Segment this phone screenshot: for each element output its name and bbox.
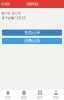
staticText: 返回	[4, 2, 10, 6]
staticText: 张三丰	[12, 11, 21, 15]
staticText: 服务	[37, 96, 43, 99]
staticText: 消费明细	[26, 2, 38, 6]
button[interactable]: 服务	[32, 90, 48, 100]
staticText: 我的	[53, 96, 59, 99]
staticText: 消费记录	[24, 38, 40, 44]
button[interactable]: 消费记录	[2, 38, 62, 44]
staticText: ￥128.50	[12, 16, 26, 20]
staticText: 账户余额	[2, 16, 14, 20]
staticText: 首页	[5, 96, 11, 99]
staticText: 账户名	[2, 11, 11, 15]
staticText: 充值记录	[24, 30, 40, 35]
button[interactable]: 我的	[48, 90, 64, 100]
button[interactable]: 返回	[0, 0, 10, 8]
staticText: 账单	[21, 96, 27, 99]
button[interactable]: 充值记录	[2, 30, 62, 36]
button[interactable]: 账单	[16, 90, 32, 100]
button[interactable]: 首页	[0, 90, 16, 100]
